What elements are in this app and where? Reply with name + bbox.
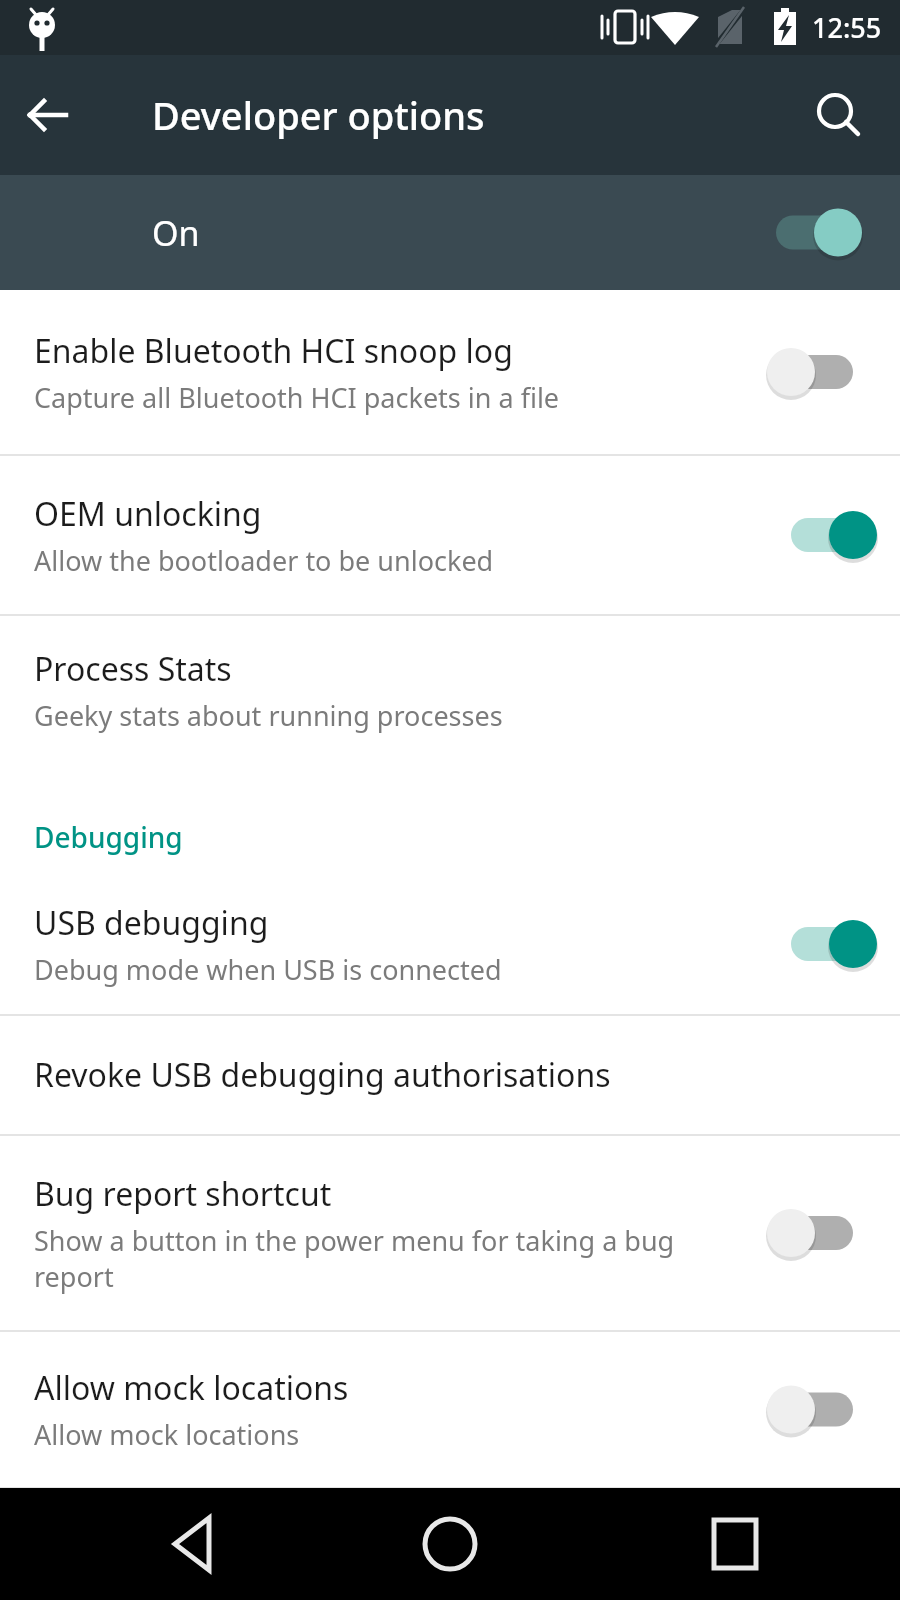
button[interactable]: Recent apps: [600, 1488, 900, 1600]
staticText: Revoke USB debugging authorisations: [34, 1053, 611, 1097]
staticText: 12:55: [812, 9, 882, 46]
staticText: On: [152, 210, 750, 256]
button[interactable]: OEM unlocking: [0, 456, 900, 614]
staticText: Bug report shortcut: [34, 1172, 332, 1216]
button[interactable]: Process Stats: [0, 616, 900, 764]
staticText: Debug mode when USB is connected: [34, 951, 502, 988]
button[interactable]: Back: [0, 1488, 300, 1600]
staticText: USB debugging: [34, 901, 269, 945]
button[interactable]: On: [0, 175, 900, 290]
staticText: Capture all Bluetooth HCI packets in a f…: [34, 379, 560, 416]
staticText: Allow mock locations: [34, 1366, 349, 1410]
button[interactable]: Back: [0, 67, 96, 163]
staticText: Geeky stats about running processes: [34, 697, 503, 734]
button[interactable]: Allow mock locations: [0, 1332, 900, 1487]
staticText: Developer options: [152, 89, 485, 141]
button[interactable]: Home: [300, 1488, 600, 1600]
staticText: Process Stats: [34, 647, 232, 691]
button[interactable]: Revoke USB debugging authorisations: [0, 1016, 900, 1134]
staticText: OEM unlocking: [34, 492, 262, 536]
staticText: Debugging: [34, 818, 183, 856]
button[interactable]: Enable Bluetooth HCI snoop log: [0, 290, 900, 454]
staticText: Show a button in the power menu for taki…: [34, 1222, 730, 1295]
staticText: Allow the bootloader to be unlocked: [34, 542, 494, 579]
staticText: Allow mock locations: [34, 1416, 300, 1453]
button[interactable]: Search: [790, 67, 886, 163]
staticText: Enable Bluetooth HCI snoop log: [34, 329, 513, 373]
button[interactable]: Bug report shortcut: [0, 1136, 900, 1330]
button[interactable]: USB debugging: [0, 874, 900, 1014]
